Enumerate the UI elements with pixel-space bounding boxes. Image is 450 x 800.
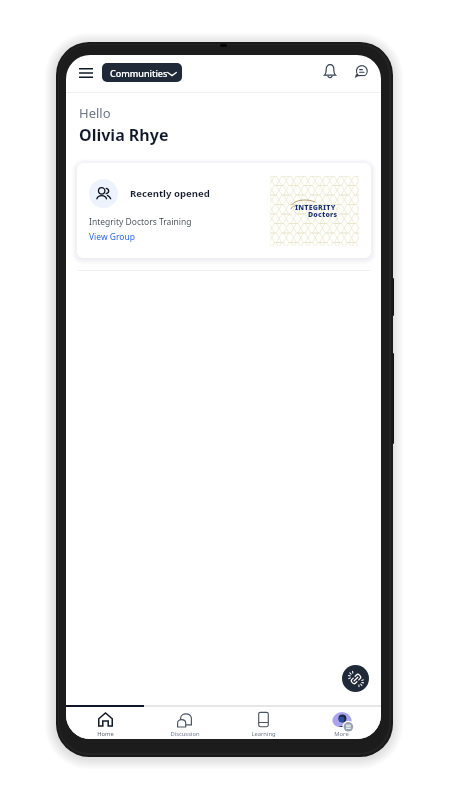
button[interactable]: More xyxy=(302,707,381,739)
staticText: Communities xyxy=(110,67,168,79)
staticText: Hello xyxy=(79,104,111,122)
button[interactable]: Discussion xyxy=(145,707,224,739)
button[interactable]: Notifications xyxy=(319,60,341,82)
staticText: Home xyxy=(97,730,114,738)
button[interactable]: Share link xyxy=(342,665,369,692)
staticText: Olivia Rhye xyxy=(79,124,169,146)
staticText: Discussion xyxy=(170,730,200,738)
button[interactable]: Messages xyxy=(350,61,372,83)
staticText: More xyxy=(334,730,349,738)
button[interactable]: View Group xyxy=(89,231,135,243)
button[interactable]: Learning xyxy=(224,707,303,739)
button[interactable]: Communities xyxy=(102,63,182,82)
staticText: INTEGRITY xyxy=(295,203,336,213)
staticText: Learning xyxy=(251,730,276,738)
staticText: Integrity Doctors Training xyxy=(89,216,192,228)
staticText: Recently opened xyxy=(130,187,210,200)
button[interactable]: Menu xyxy=(73,60,99,86)
staticText: Doctors xyxy=(308,210,338,220)
button[interactable]: Home xyxy=(66,707,145,739)
button[interactable]: Recently opened xyxy=(77,163,371,258)
